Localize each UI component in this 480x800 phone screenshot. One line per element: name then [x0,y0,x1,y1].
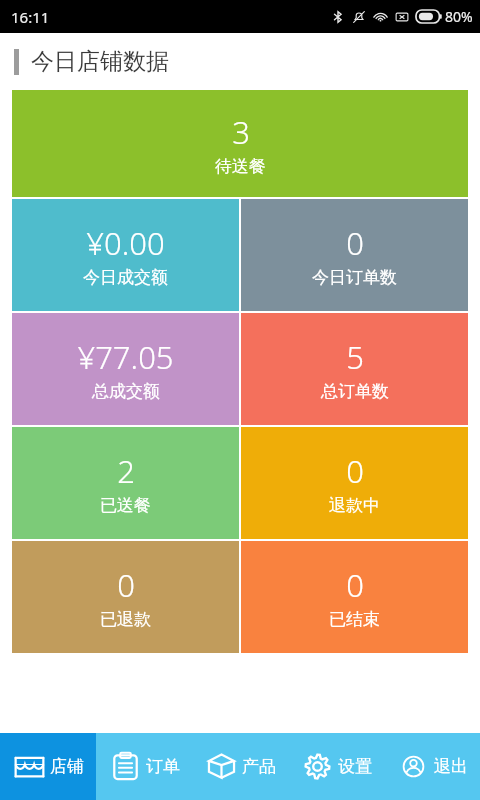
staticText: ¥0.00 [86,222,165,264]
button[interactable]: 店铺 [0,733,96,800]
staticText: 已结束 [329,609,380,630]
button[interactable]: 0 [12,541,239,653]
staticText: 店铺 [50,756,84,777]
staticText: 今日订单数 [312,267,397,288]
button[interactable]: 5 [241,313,468,425]
staticText: ¥77.05 [77,336,174,378]
button[interactable]: 0 [241,199,468,311]
button[interactable]: 订单 [96,733,192,800]
staticText: 已退款 [100,609,151,630]
button[interactable]: 3 [12,90,468,197]
staticText: 产品 [242,756,276,777]
staticText: 订单 [146,756,180,777]
button[interactable]: ¥0.00 [12,199,239,311]
staticText: 设置 [338,756,372,777]
button[interactable]: 0 [241,541,468,653]
staticText: 退款中 [329,495,380,516]
staticText: 80% [445,7,473,26]
staticText: 0 [346,564,364,606]
staticText: 待送餐 [215,156,266,177]
staticText: 总订单数 [321,381,389,402]
button[interactable]: 2 [12,427,239,539]
staticText: 退出 [434,756,468,777]
staticText: 今日成交额 [83,267,168,288]
staticText: 2 [117,450,135,492]
staticText: 0 [117,564,135,606]
staticText: 已送餐 [100,495,151,516]
staticText: 今日店铺数据 [31,47,169,76]
staticText: 0 [346,450,364,492]
staticText: 16:11 [11,7,50,27]
button[interactable]: 0 [241,427,468,539]
staticText: 0 [346,222,364,264]
button[interactable]: ¥77.05 [12,313,239,425]
button[interactable]: 产品 [192,733,288,800]
staticText: 总成交额 [92,381,160,402]
staticText: 5 [346,336,364,378]
button[interactable]: 退出 [384,733,480,800]
button[interactable]: 设置 [288,733,384,800]
staticText: 3 [232,111,250,153]
